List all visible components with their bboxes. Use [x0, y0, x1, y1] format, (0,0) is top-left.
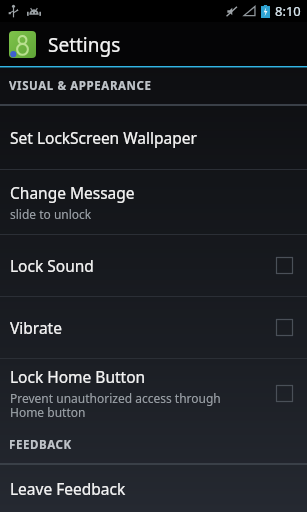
staticText: Vibrate [10, 317, 62, 338]
button[interactable]: Toggle Vibrate [276, 319, 293, 336]
button[interactable]: Toggle Lock Sound [276, 257, 293, 274]
staticText: 8:10 [275, 2, 301, 20]
staticText: Lock Sound [10, 255, 94, 276]
staticText: Settings [48, 32, 121, 58]
button[interactable]: Leave Feedback [0, 465, 307, 512]
button[interactable]: Vibrate [0, 297, 307, 358]
staticText: Change Message [10, 182, 135, 203]
staticText: FEEDBACK [9, 437, 72, 453]
staticText: Lock Home Button [10, 366, 146, 387]
staticText: slide to unlock [10, 206, 92, 222]
button[interactable]: Lock Home Button [0, 359, 307, 427]
button[interactable]: Change Message [0, 170, 307, 234]
staticText: Prevent unauthorized access through Home… [10, 390, 221, 421]
button[interactable]: Toggle Lock Home Button [276, 385, 293, 402]
button[interactable]: Set LockScreen Wallpaper [0, 106, 307, 169]
staticText: Set LockScreen Wallpaper [10, 127, 197, 148]
staticText: Leave Feedback [10, 478, 126, 499]
button[interactable]: Lock Sound [0, 235, 307, 296]
staticText: VISUAL & APPEARANCE [9, 78, 152, 94]
